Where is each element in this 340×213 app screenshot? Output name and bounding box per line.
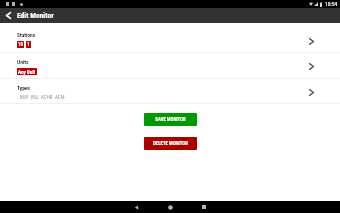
staticText: 1 xyxy=(27,42,30,48)
button[interactable]: Home xyxy=(159,201,181,213)
button[interactable]: Types xyxy=(0,79,340,103)
staticText: Units xyxy=(17,59,29,65)
staticText: 10 xyxy=(18,42,23,48)
staticText: ACM xyxy=(55,94,65,100)
staticText: BUL xyxy=(31,94,39,100)
staticText: ACHR xyxy=(41,94,53,100)
button[interactable]: Units xyxy=(0,53,340,78)
staticText: Edit Monitor xyxy=(17,11,54,20)
button[interactable]: Back xyxy=(125,201,147,213)
button[interactable]: DELETE MONITOR xyxy=(144,137,197,150)
staticText: SAVE MONITOR xyxy=(155,117,186,123)
button[interactable]: Stations xyxy=(0,23,340,52)
button[interactable]: SAVE MONITOR xyxy=(144,113,197,126)
button[interactable]: Navigate up xyxy=(0,8,17,23)
button[interactable]: Recent apps xyxy=(193,201,215,213)
staticText: DELETE MONITOR xyxy=(153,141,188,147)
staticText: Stations xyxy=(17,32,36,38)
staticText: Any Unit xyxy=(18,69,36,75)
staticText: BUP xyxy=(20,94,29,100)
staticText: Types xyxy=(17,85,31,91)
staticText: 10:54 xyxy=(325,1,338,8)
